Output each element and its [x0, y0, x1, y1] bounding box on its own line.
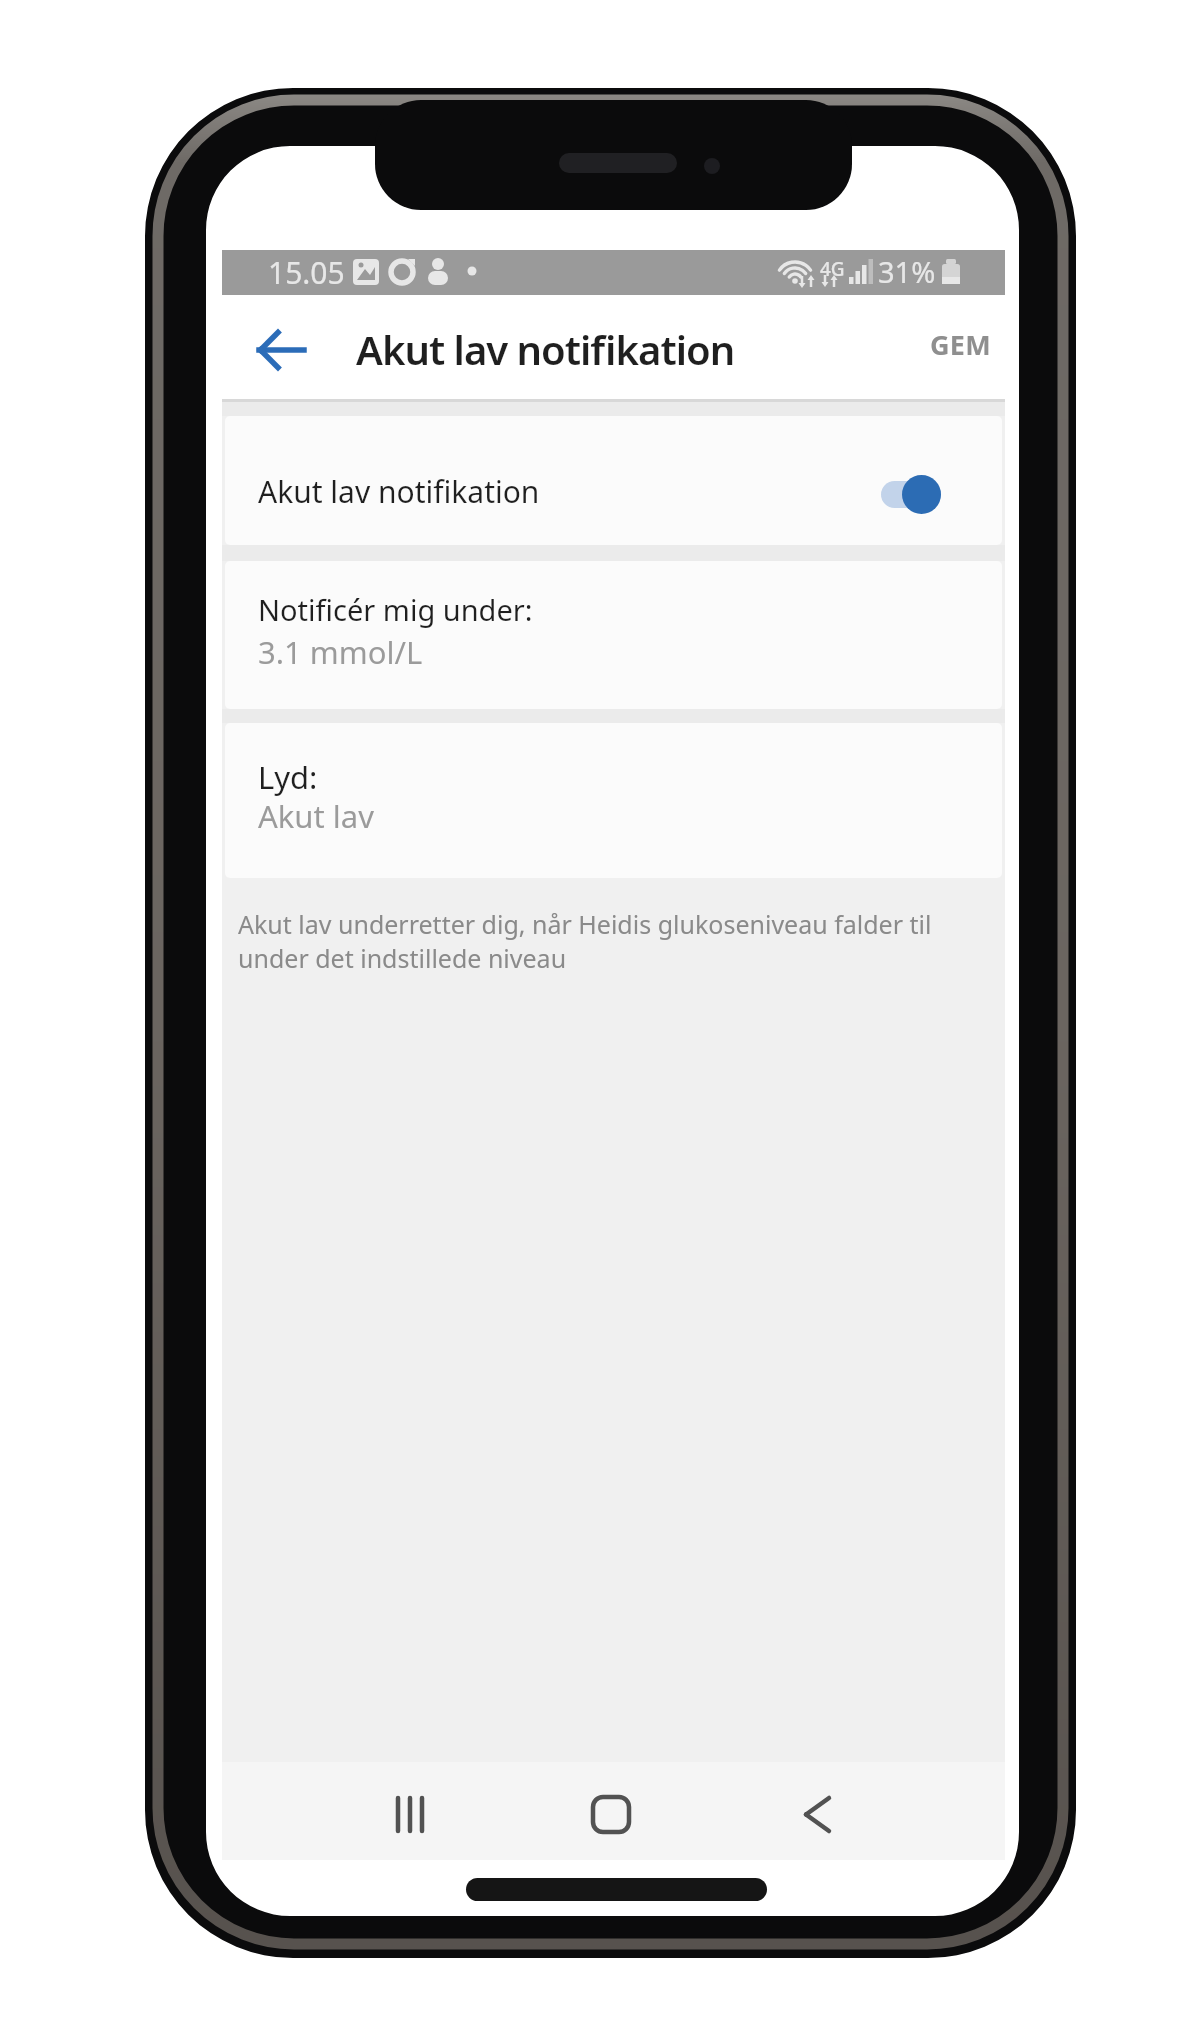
staticText: Akut lav underretter dig, når Heidis glu…: [238, 907, 932, 941]
button[interactable]: [571, 1788, 651, 1840]
button[interactable]: Akut lav notifikation: [225, 416, 1002, 545]
staticText: 3.1 mmol/L: [258, 631, 423, 673]
button[interactable]: Notificér mig under:: [225, 561, 1002, 709]
staticText: Lyd:: [258, 756, 318, 798]
button[interactable]: [222, 295, 332, 399]
staticText: Akut lav notifikation: [258, 471, 540, 512]
staticText: Akut lav notifikation: [356, 322, 735, 376]
button[interactable]: [777, 1788, 857, 1840]
staticText: 4G: [820, 256, 845, 282]
staticText: under det indstillede niveau: [238, 941, 567, 975]
staticText: Notificér mig under:: [258, 590, 533, 629]
staticText: 15.05: [268, 252, 345, 293]
button[interactable]: GEM: [922, 325, 997, 373]
button[interactable]: Lyd:: [225, 723, 1002, 878]
button[interactable]: [370, 1788, 450, 1840]
staticText: Akut lav: [258, 795, 374, 837]
staticText: GEM: [930, 326, 992, 363]
staticText: 31%: [878, 252, 936, 291]
